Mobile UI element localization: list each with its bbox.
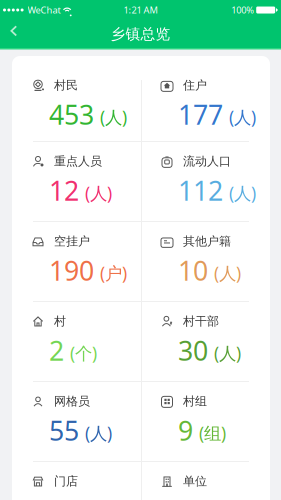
staticText: 100% (231, 4, 254, 16)
staticText: (人) (229, 182, 256, 205)
button[interactable]: 网格员 (12, 381, 141, 461)
staticText: 177 (178, 97, 223, 132)
staticText: (组) (199, 422, 226, 445)
button[interactable]: Back (0, 22, 18, 45)
staticText: (人) (214, 342, 241, 365)
staticText: 1:21 AM (123, 4, 157, 16)
staticText: WeChat (28, 4, 61, 16)
button[interactable]: 村组 (141, 381, 270, 461)
staticText: 112 (178, 173, 223, 208)
staticText: 10 (178, 253, 208, 288)
staticText: (户) (100, 262, 127, 285)
staticText: 村干部 (183, 314, 219, 329)
staticText: 单位 (183, 474, 207, 489)
staticText: 30 (178, 333, 208, 368)
staticText: 村民 (54, 78, 78, 93)
staticText: 其他户籍 (183, 234, 231, 249)
staticText: 55 (49, 413, 79, 448)
button[interactable]: 村干部 (141, 301, 270, 381)
staticText: 村 (54, 314, 66, 329)
staticText: 2 (49, 333, 64, 368)
staticText: (人) (214, 262, 241, 285)
staticText: (人) (85, 422, 112, 445)
button[interactable]: 村民 (12, 56, 141, 141)
staticText: 门店 (54, 474, 78, 489)
button[interactable]: 村 (12, 301, 141, 381)
staticText: (人) (229, 106, 256, 129)
staticText: 乡镇总览 (110, 25, 170, 43)
button[interactable]: 门店 (12, 461, 141, 500)
staticText: 流动人口 (183, 154, 231, 169)
staticText: (人) (85, 182, 112, 205)
staticText: 网格员 (54, 394, 90, 409)
staticText: (人) (100, 106, 127, 129)
staticText: 453 (49, 97, 94, 132)
staticText: (个) (70, 342, 97, 365)
button[interactable]: 重点人员 (12, 141, 141, 221)
staticText: 重点人员 (54, 154, 102, 169)
staticText: 住户 (183, 78, 207, 93)
button[interactable]: 其他户籍 (141, 221, 270, 301)
staticText: 村组 (183, 394, 207, 409)
staticText: 190 (49, 253, 94, 288)
button[interactable]: 单位 (141, 461, 270, 500)
button[interactable]: 住户 (141, 56, 270, 141)
staticText: 9 (178, 413, 193, 448)
staticText: 12 (49, 173, 79, 208)
button[interactable]: 流动人口 (141, 141, 270, 221)
staticText: 空挂户 (54, 234, 90, 249)
button[interactable]: 空挂户 (12, 221, 141, 301)
